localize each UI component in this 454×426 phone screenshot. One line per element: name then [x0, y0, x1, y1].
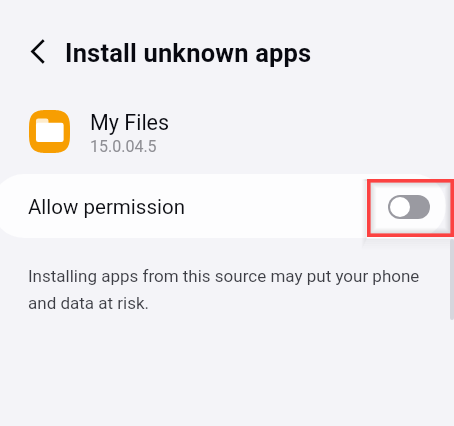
- staticText: and data at risk.: [28, 293, 150, 313]
- staticText: 15.0.04.5: [90, 137, 157, 156]
- staticText: Allow permission: [28, 195, 185, 219]
- staticText: Installing apps from this source may put…: [28, 266, 420, 286]
- staticText: My Files: [90, 110, 170, 135]
- button[interactable]: Navigate up: [20, 32, 54, 70]
- button[interactable]: [0, 174, 446, 238]
- staticText: Install unknown apps: [65, 38, 312, 68]
- button[interactable]: Allow permission switch: [388, 195, 430, 219]
- button[interactable]: My Files: [0, 99, 454, 163]
